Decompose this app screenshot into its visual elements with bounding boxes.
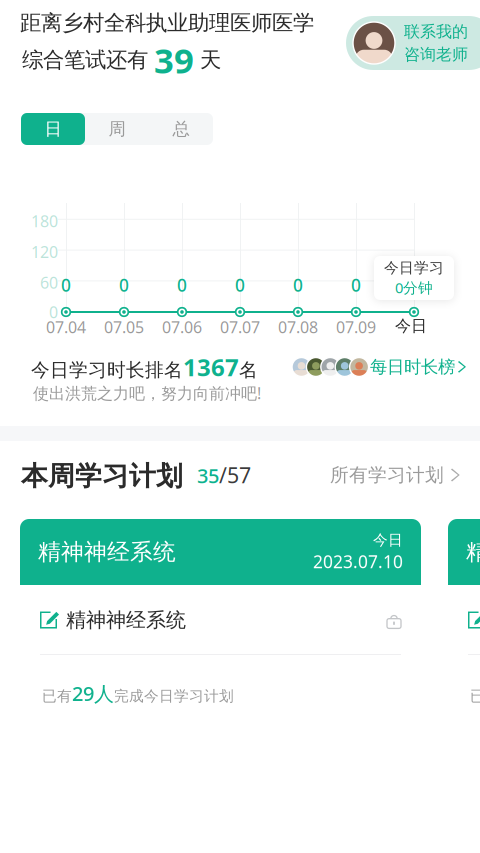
staticText: 完成今日学习计划 (114, 687, 234, 705)
staticText: 今日 (395, 316, 427, 336)
staticText: 180 (31, 210, 58, 232)
staticText: 0分钟 (395, 278, 433, 297)
button[interactable]: 联系我的 (346, 16, 480, 70)
button[interactable]: 精神神经系统 (20, 519, 421, 809)
staticText: 名 (239, 359, 258, 381)
staticText: 每日时长榜 (370, 356, 455, 378)
staticText: 0 (119, 273, 129, 296)
staticText: 距离乡村全科执业助理医师医学 (20, 10, 314, 36)
staticText: 精神神经系统 (38, 538, 176, 566)
staticText: 07.09 (336, 316, 376, 338)
staticText: 07.07 (220, 316, 260, 338)
staticText: 0 (61, 273, 71, 296)
staticText: 已有 (470, 687, 480, 705)
staticText: 日 (44, 118, 61, 140)
staticText: /57 (219, 461, 251, 489)
staticText: 35 (197, 462, 219, 489)
staticText: 0 (351, 273, 361, 296)
staticText: 本周学习计划 (21, 460, 183, 492)
button[interactable]: 所有学习计划 (330, 462, 460, 488)
button[interactable]: 精神神经系统 (448, 519, 480, 809)
staticText: 0 (409, 273, 419, 296)
staticText: 联系我的 (404, 22, 468, 41)
staticText: 120 (31, 241, 58, 262)
staticText: 60 (40, 272, 58, 293)
button[interactable]: 周 (85, 113, 149, 145)
staticText: 0 (177, 273, 187, 296)
button[interactable]: 总 (149, 113, 213, 145)
staticText: 07.08 (278, 316, 318, 338)
staticText: 所有学习计划 (330, 463, 444, 486)
staticText: 1367 (183, 351, 239, 383)
staticText: 0 (49, 301, 58, 323)
staticText: 精神神经系统 (466, 538, 480, 566)
staticText: 29人 (72, 680, 114, 707)
button[interactable]: 每日时长榜 (292, 354, 472, 380)
staticText: 0 (235, 273, 245, 296)
staticText: 2023.07.10 (313, 550, 403, 573)
button[interactable]: 日 (21, 113, 85, 145)
staticText: 天 (200, 47, 221, 73)
staticText: 今日 (373, 531, 403, 549)
staticText: 周 (108, 118, 125, 140)
staticText: 精神神经系统 (66, 608, 186, 632)
staticText: 07.05 (104, 316, 144, 338)
staticText: 今日学习时长排名 (31, 359, 183, 381)
staticText: 综合笔试还有 (22, 47, 148, 73)
staticText: 总 (172, 118, 189, 140)
staticText: 0 (293, 273, 303, 296)
staticText: 07.06 (162, 316, 202, 338)
staticText: 今日学习 (384, 259, 444, 277)
staticText: 使出洪荒之力吧，努力向前冲吧! (33, 382, 261, 404)
staticText: 咨询老师 (404, 44, 468, 64)
staticText: 07.04 (46, 316, 86, 338)
staticText: 39 (154, 37, 194, 83)
staticText: 已有 (42, 687, 72, 705)
